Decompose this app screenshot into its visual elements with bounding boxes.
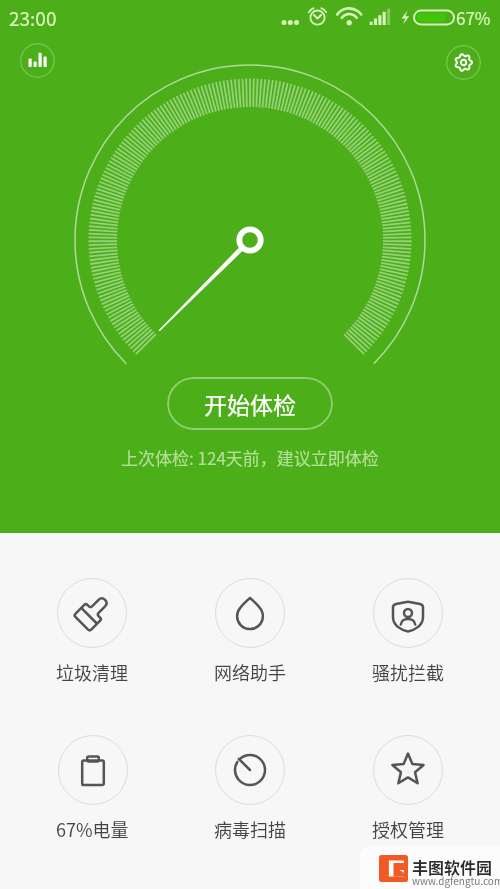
staticText: 病毒扫描: [214, 816, 286, 842]
staticText: 开始体检: [204, 387, 296, 420]
staticText: 垃圾清理: [56, 659, 128, 685]
staticText: 骚扰拦截: [372, 659, 444, 685]
staticText: 67%电量: [56, 816, 129, 842]
button[interactable]: Statistics: [20, 43, 55, 78]
button[interactable]: 网络助手: [198, 578, 302, 693]
staticText: 上次体检: 124天前，建议立即体检: [121, 445, 379, 470]
button[interactable]: 开始体检: [167, 377, 333, 430]
staticText: www.dgfengtu.com: [412, 873, 500, 887]
button[interactable]: 67%电量: [40, 735, 144, 850]
button[interactable]: 垃圾清理: [40, 578, 144, 693]
staticText: 丰图软件园: [412, 855, 493, 878]
staticText: 授权管理: [372, 816, 444, 842]
button[interactable]: 授权管理: [356, 735, 460, 850]
staticText: 23:00: [9, 4, 57, 32]
staticText: 67%: [456, 5, 491, 30]
button[interactable]: Settings: [446, 45, 481, 80]
staticText: 网络助手: [214, 659, 286, 685]
button[interactable]: 病毒扫描: [198, 735, 302, 850]
button[interactable]: 骚扰拦截: [356, 578, 460, 693]
